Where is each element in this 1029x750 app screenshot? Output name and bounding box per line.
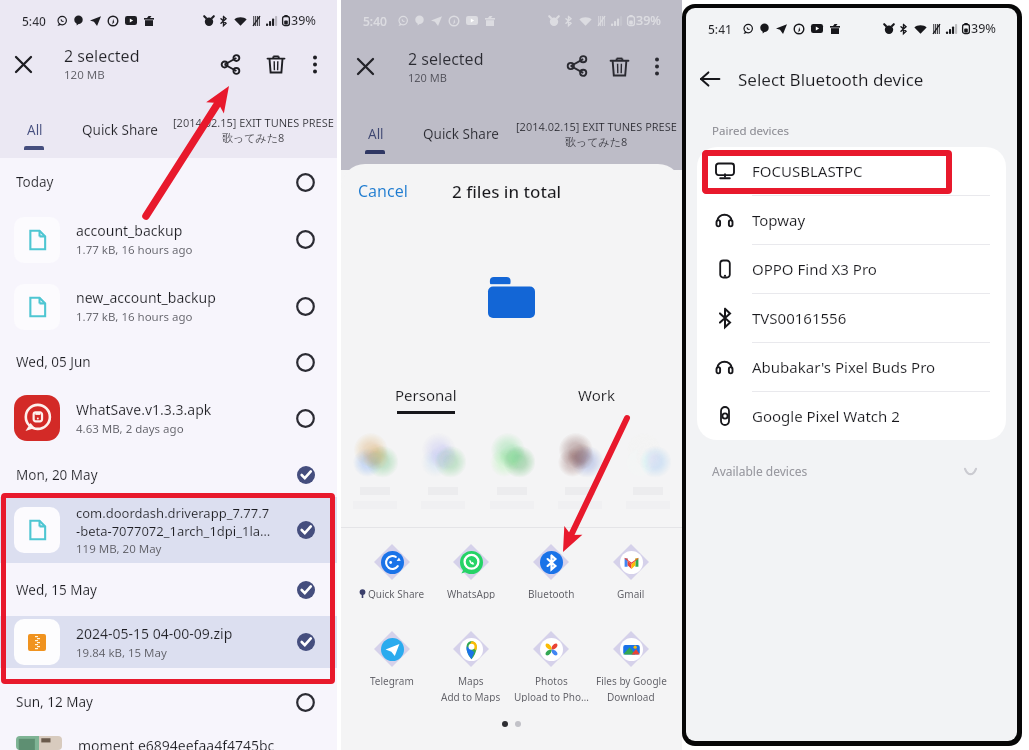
button[interactable]: Photos (511, 630, 591, 702)
staticText: Personal (395, 385, 457, 405)
staticText: Quick Share (82, 121, 158, 139)
staticText: OPPO Find X3 Pro (752, 259, 877, 279)
button[interactable]: More options (640, 49, 674, 83)
button[interactable]: Back (686, 55, 734, 103)
staticText: Topway (752, 210, 806, 230)
button[interactable]: Select (296, 173, 315, 192)
staticText: All (27, 121, 43, 139)
staticText: FOCUSBLASTPC (752, 161, 863, 181)
staticText: Files by Google (596, 674, 667, 688)
button[interactable]: TVS00161556 (697, 294, 1006, 342)
button[interactable]: Delete (598, 45, 640, 87)
staticText: Wed, 05 Jun (16, 353, 91, 371)
button[interactable]: Select (296, 297, 315, 316)
button[interactable]: Work (511, 385, 682, 414)
button[interactable]: Today (0, 158, 337, 206)
button[interactable]: WhatSave.v1.3.3.apk (0, 384, 337, 452)
button[interactable]: Gmail (591, 543, 671, 599)
button[interactable]: Close (341, 42, 389, 90)
staticText: [2014.02.15] EXIT TUNES PRESE (173, 115, 334, 130)
button[interactable]: FOCUSBLASTPC (697, 147, 1006, 195)
staticText: 1.77 kB, 16 hours ago (76, 309, 193, 325)
button[interactable]: Quick Share (70, 110, 170, 150)
staticText: TVS00161556 (752, 308, 847, 328)
staticText: 2 selected (408, 48, 484, 70)
staticText: 120 MB (64, 67, 105, 83)
button[interactable]: account_backup (0, 206, 337, 273)
button[interactable]: Selected (297, 633, 315, 651)
staticText: Mon, 20 May (16, 466, 98, 484)
staticText: 39% (291, 12, 316, 29)
button[interactable]: All (0, 110, 70, 150)
staticText: 歌ってみた8 (565, 134, 628, 149)
staticText: Abubakar's Pixel Buds Pro (752, 357, 936, 377)
staticText: Google Pixel Watch 2 (752, 406, 900, 426)
button[interactable]: Delete (256, 44, 296, 84)
button[interactable]: WhatsApp (431, 543, 511, 599)
button[interactable]: All (341, 114, 411, 154)
staticText: 120 MB (408, 70, 447, 85)
button[interactable]: Selected (297, 466, 315, 484)
button[interactable]: new_account_backup (0, 273, 337, 340)
staticText: Today (16, 173, 54, 191)
staticText: 39% (636, 12, 661, 29)
button[interactable]: Select (296, 693, 315, 712)
staticText: 2 selected (64, 45, 140, 67)
button[interactable]: Quick Share (352, 543, 431, 599)
staticText: new_account_backup (76, 288, 216, 307)
button[interactable]: Files by Google (591, 630, 671, 702)
staticText: Sun, 12 May (16, 693, 93, 711)
staticText: [2014.02.15] EXIT TUNES PRESE (516, 119, 677, 134)
staticText: WhatSave.v1.3.3.apk (76, 400, 212, 419)
button[interactable]: [2014.02.15] EXIT TUNES PRESE (170, 110, 337, 150)
button[interactable]: com.doordash.driverapp_7.77.7 (0, 497, 337, 563)
button[interactable]: Topway (697, 196, 1006, 244)
staticText: account_backup (76, 221, 183, 240)
staticText: Gmail (617, 587, 645, 599)
staticText: 歌ってみた8 (222, 130, 285, 145)
staticText: Bluetooth (528, 587, 575, 599)
button[interactable]: Close (0, 41, 46, 87)
staticText: 19.84 kB, 15 May (76, 645, 167, 661)
staticText: 5:40 (363, 13, 387, 29)
button[interactable]: Mon, 20 May (0, 452, 337, 497)
button[interactable]: 2024-05-15 04-00-09.zip (0, 616, 337, 668)
staticText: 5:41 (708, 21, 732, 37)
staticText: All (368, 125, 384, 143)
staticText: 4.63 MB, 2 days ago (76, 421, 184, 437)
button[interactable]: Cancel (341, 174, 416, 208)
button[interactable]: Telegram (352, 630, 431, 702)
button[interactable]: More options (298, 47, 332, 81)
staticText: WhatsApp (447, 587, 496, 599)
button[interactable]: Abubakar's Pixel Buds Pro (697, 343, 1006, 391)
button[interactable]: Available devices (686, 456, 1017, 486)
button[interactable]: Wed, 05 Jun (0, 340, 337, 384)
button[interactable]: Selected (297, 581, 315, 599)
button[interactable]: [2014.02.15] EXIT TUNES PRESE (511, 114, 682, 154)
staticText: com.doordash.driverapp_7.77.7 (76, 504, 270, 522)
staticText: Upload to Pho… (514, 690, 589, 702)
staticText: 1.77 kB, 16 hours ago (76, 242, 193, 258)
button[interactable]: Select (296, 230, 315, 249)
button[interactable]: Select (296, 353, 315, 372)
button[interactable]: Selected (297, 521, 315, 539)
button[interactable]: Share (210, 44, 250, 84)
staticText: Download (607, 690, 655, 702)
button[interactable]: Maps (431, 630, 511, 702)
staticText: 119 MB, 20 May (76, 541, 162, 557)
button[interactable]: Quick Share (411, 114, 511, 154)
button[interactable]: Personal (341, 385, 511, 414)
staticText: Work (578, 385, 615, 405)
staticText: Quick Share (423, 125, 499, 143)
button[interactable]: Bluetooth (511, 543, 591, 599)
staticText: Add to Maps (441, 690, 501, 702)
button[interactable]: Share (556, 45, 598, 87)
button[interactable]: Wed, 15 May (0, 563, 337, 616)
staticText: Available devices (712, 463, 808, 479)
button[interactable]: Select (296, 409, 315, 428)
button[interactable]: Google Pixel Watch 2 (697, 392, 1006, 440)
staticText: Select Bluetooth device (738, 68, 924, 91)
button[interactable]: OPPO Find X3 Pro (697, 245, 1006, 293)
button[interactable]: moment e6894eefaa4f4745bc (0, 736, 337, 750)
button[interactable]: Sun, 12 May (0, 668, 337, 736)
